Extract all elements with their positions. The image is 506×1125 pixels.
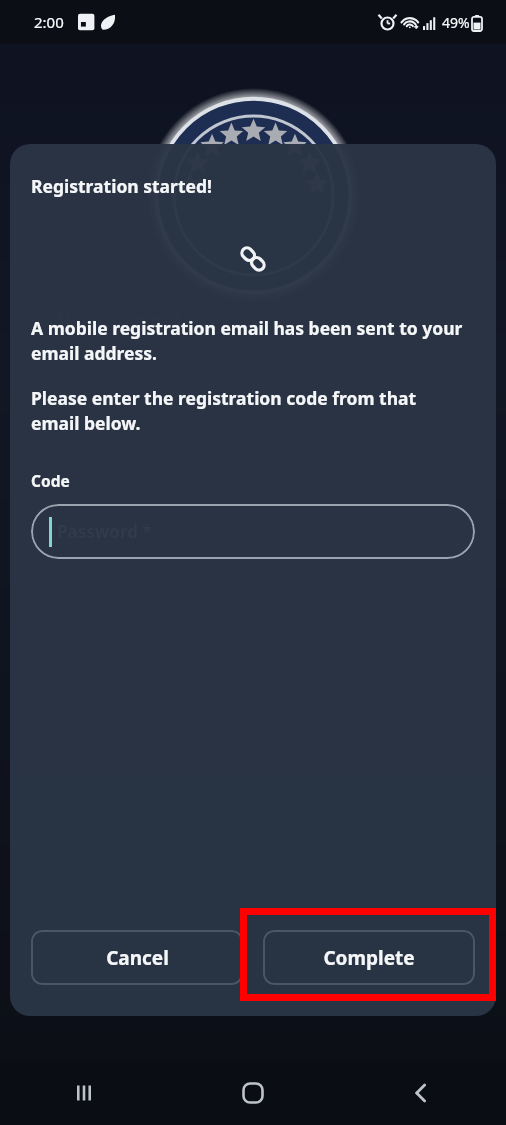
- staticText: Password *: [57, 520, 152, 543]
- button[interactable]: Complete: [263, 930, 475, 985]
- staticText: Registration started!: [31, 174, 212, 198]
- staticText: Cancel: [106, 945, 169, 971]
- button[interactable]: Back: [337, 1060, 506, 1125]
- button[interactable]: Home: [168, 1060, 337, 1125]
- staticText: 49%: [442, 13, 470, 32]
- staticText: A mobile registration email has been sen…: [31, 316, 472, 366]
- staticText: 2:00: [34, 12, 64, 32]
- staticText: Register App: [56, 303, 216, 337]
- staticText: Complete: [323, 945, 415, 971]
- staticText: Code: [31, 470, 70, 491]
- button[interactable]: Cancel: [31, 930, 243, 985]
- button[interactable]: Recents: [0, 1060, 168, 1125]
- button[interactable]: Password *: [31, 504, 475, 559]
- staticText: Please enter the registration code from …: [31, 386, 462, 436]
